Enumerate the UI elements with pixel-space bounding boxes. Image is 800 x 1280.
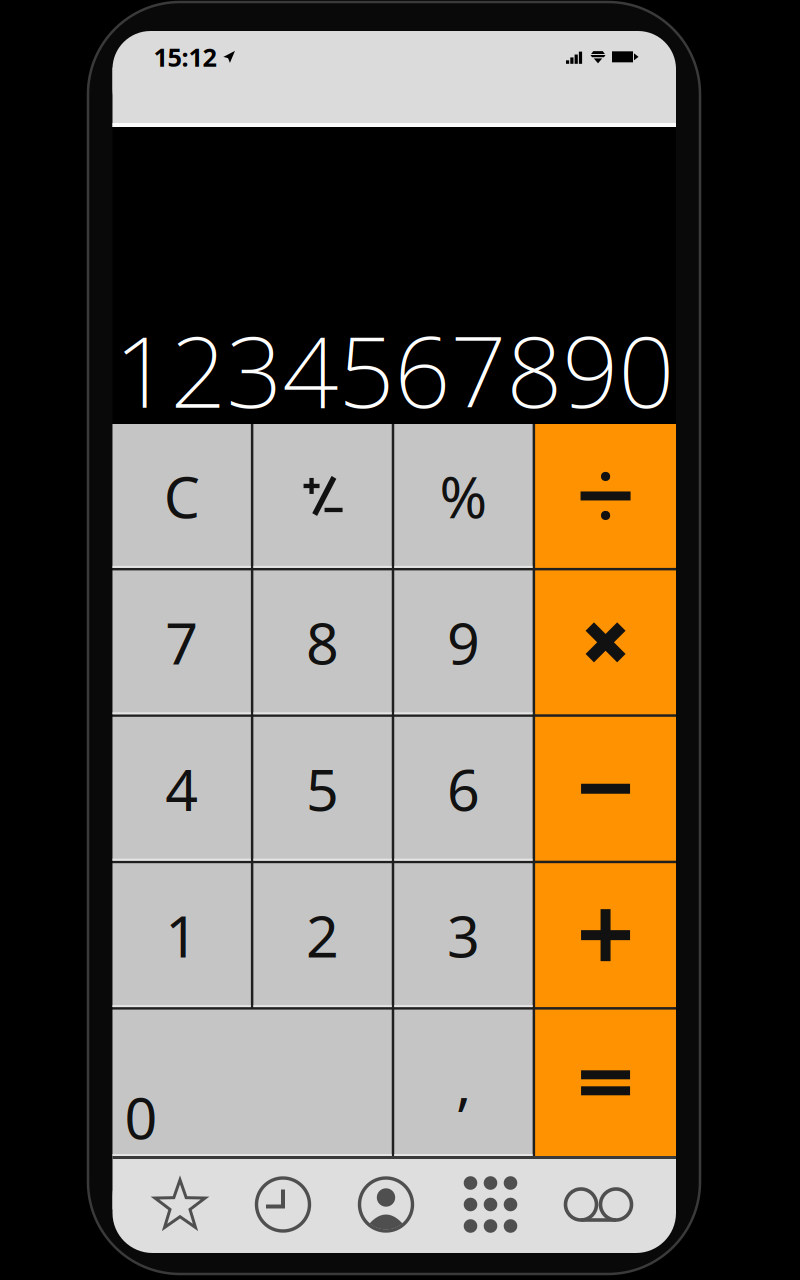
button[interactable]: Recents: [231, 1156, 334, 1253]
button[interactable]: Contacts: [334, 1156, 437, 1253]
staticText: %: [439, 458, 487, 534]
button[interactable]: Multiply: [535, 570, 676, 714]
staticText: 15:12: [153, 40, 216, 74]
button[interactable]: 0: [112, 1010, 392, 1156]
button[interactable]: 7: [112, 570, 251, 714]
staticText: 9: [447, 604, 480, 680]
button[interactable]: Plus minus: [253, 424, 392, 568]
button[interactable]: ,: [394, 1010, 533, 1156]
button[interactable]: Divide: [535, 424, 676, 568]
button[interactable]: Keypad: [437, 1156, 543, 1253]
button[interactable]: 9: [394, 570, 533, 714]
staticText: 0: [124, 1079, 157, 1155]
button[interactable]: 2: [253, 863, 392, 1007]
button[interactable]: Voicemail: [543, 1156, 653, 1253]
staticText: 3: [447, 897, 480, 973]
button[interactable]: Favorites: [128, 1156, 231, 1253]
staticText: 1234567890: [114, 304, 674, 435]
staticText: 6: [447, 751, 480, 827]
button[interactable]: 1: [112, 863, 251, 1007]
staticText: 1: [165, 897, 198, 973]
staticText: 7: [165, 604, 198, 680]
button[interactable]: 4: [112, 717, 251, 861]
button[interactable]: 8: [253, 570, 392, 714]
staticText: 2: [306, 897, 339, 973]
button[interactable]: Subtract: [535, 717, 676, 861]
staticText: 5: [306, 751, 339, 827]
staticText: C: [164, 458, 200, 534]
button[interactable]: Add: [535, 863, 676, 1007]
button[interactable]: C: [112, 424, 251, 568]
button[interactable]: %: [394, 424, 533, 568]
staticText: 8: [306, 604, 339, 680]
button[interactable]: 3: [394, 863, 533, 1007]
staticText: ,: [456, 1045, 471, 1121]
button[interactable]: Equals: [535, 1010, 676, 1156]
button[interactable]: 5: [253, 717, 392, 861]
staticText: 4: [165, 751, 198, 827]
button[interactable]: 6: [394, 717, 533, 861]
